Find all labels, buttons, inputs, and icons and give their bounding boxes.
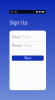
staticText: Next (24, 56, 31, 60)
staticText: Sign Up (9, 20, 27, 26)
staticText: Phone (12, 44, 22, 47)
staticText: Enter (23, 44, 31, 47)
staticText: Email (12, 35, 21, 39)
staticText: Enter (22, 35, 30, 39)
button[interactable]: Next (12, 55, 44, 61)
staticText: 9:41 (11, 10, 17, 13)
